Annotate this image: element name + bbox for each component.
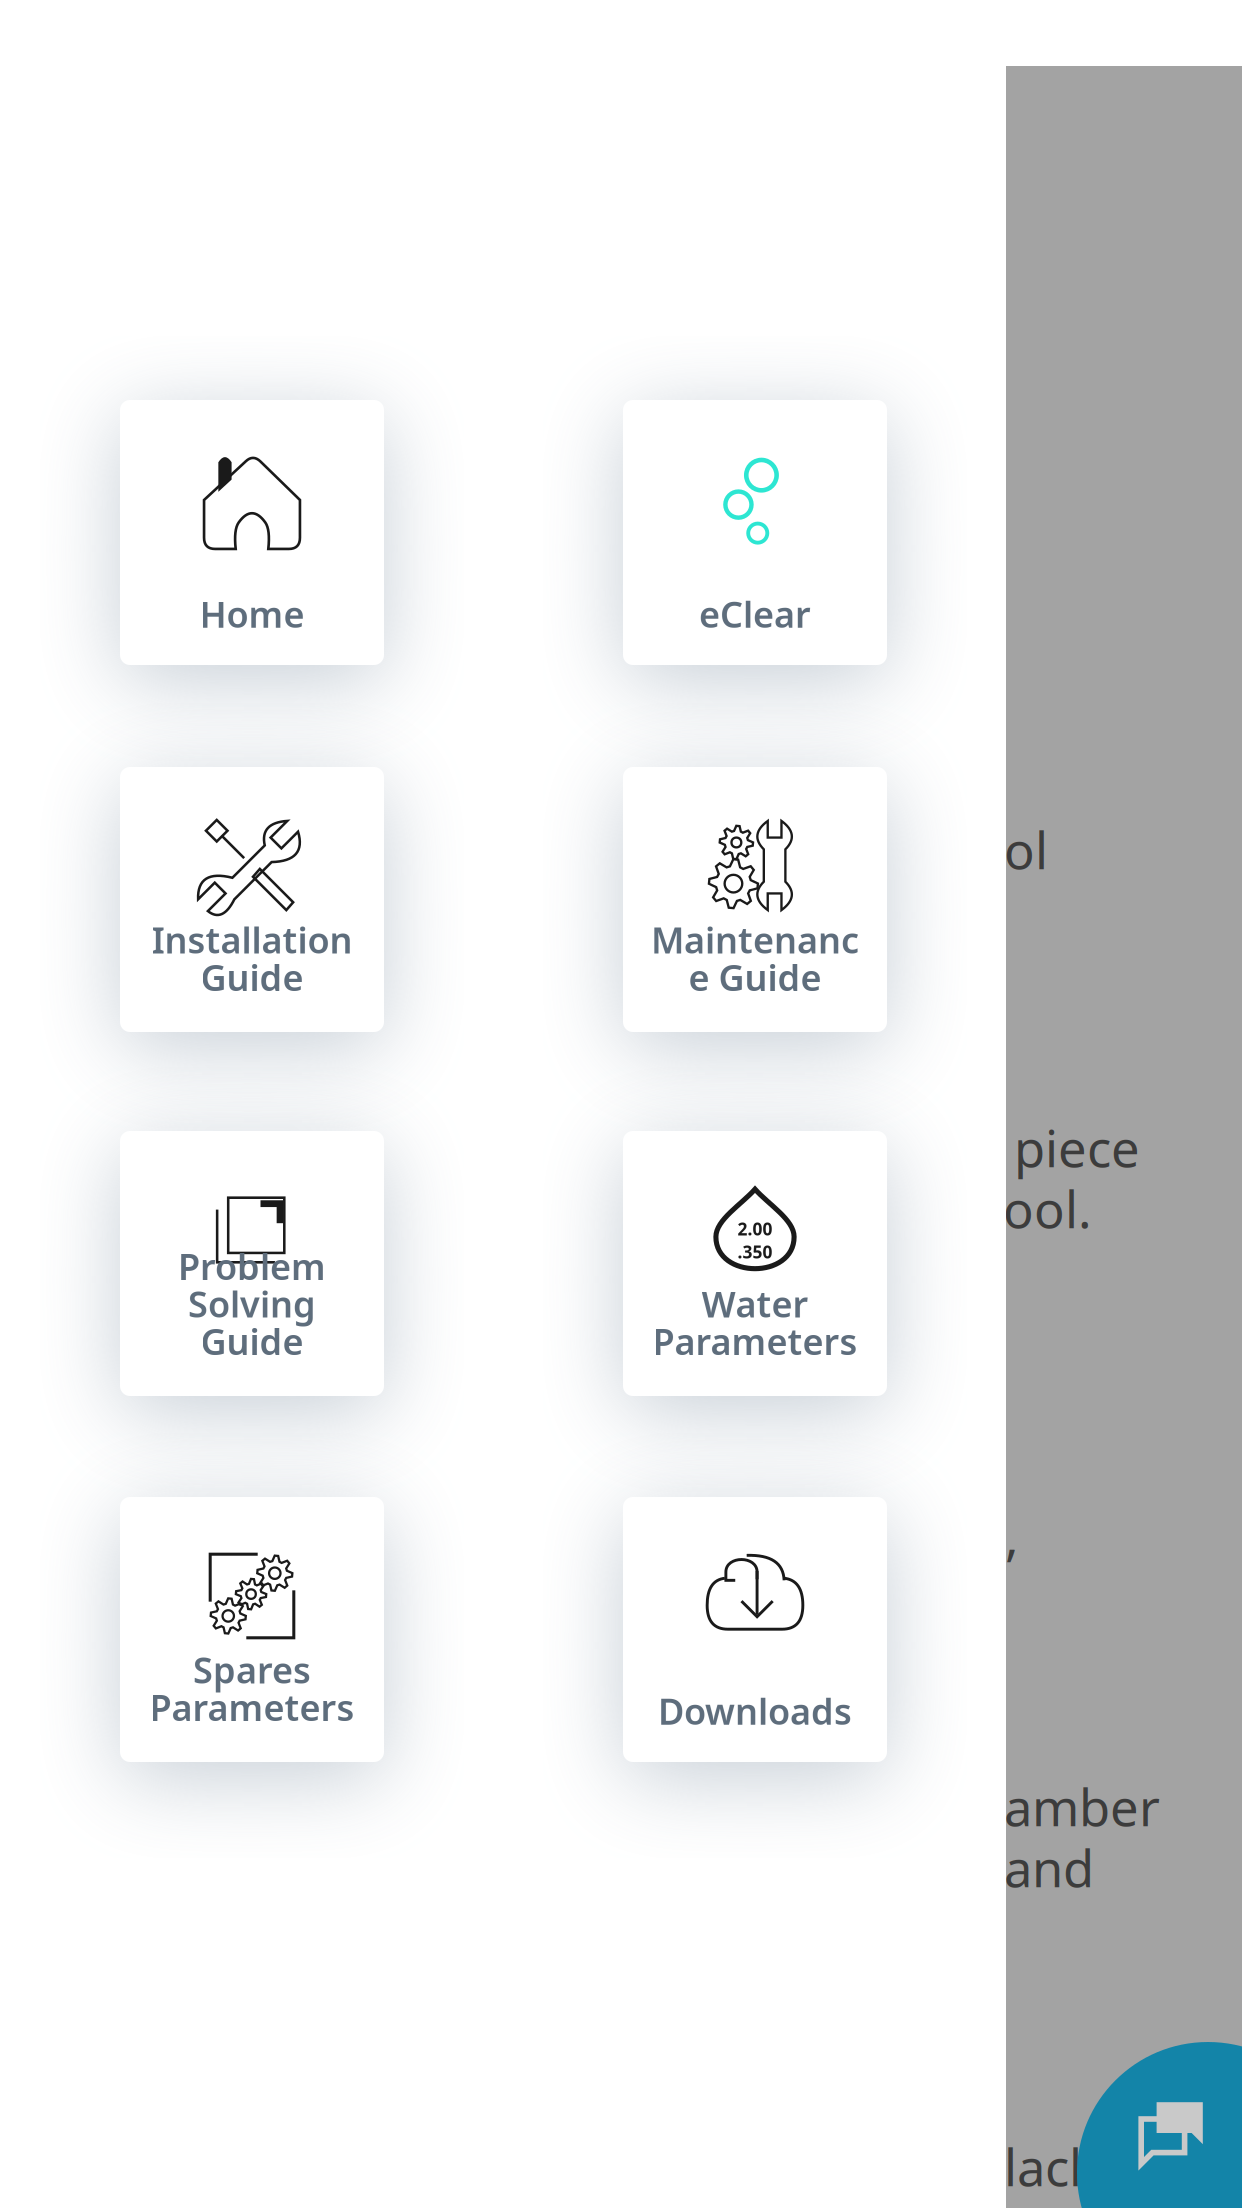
staticText: Guide <box>200 1317 303 1365</box>
staticText: Parameters <box>149 1683 354 1731</box>
button[interactable]: Open chat <box>1077 2042 1242 2208</box>
staticText: Home <box>199 590 304 638</box>
staticText: .350 <box>737 1240 772 1263</box>
button[interactable]: Spares <box>120 1497 384 1762</box>
staticText: eClear <box>699 590 811 638</box>
staticText: Solving <box>188 1280 316 1327</box>
button[interactable]: Maintenanc <box>623 767 887 1032</box>
staticText: piece <box>1014 1114 1140 1181</box>
staticText: Water <box>701 1280 808 1327</box>
staticText: Downloads <box>658 1687 852 1735</box>
staticText: ol <box>1004 816 1048 883</box>
staticText: e Guide <box>688 953 821 1001</box>
staticText: amber <box>1004 1773 1160 1840</box>
staticText: 2.00 <box>737 1217 772 1240</box>
staticText: Installation <box>151 916 352 963</box>
staticText: Parameters <box>652 1317 857 1365</box>
staticText: and <box>1004 1834 1094 1901</box>
staticText: ool. <box>1003 1175 1092 1242</box>
staticText: Problem <box>178 1242 326 1290</box>
staticText: Guide <box>200 953 303 1001</box>
button[interactable]: Installation <box>120 767 384 1032</box>
button[interactable]: Downloads <box>623 1497 887 1762</box>
button[interactable]: 2.00 <box>623 1131 887 1396</box>
button[interactable]: Problem <box>120 1131 384 1396</box>
staticText: Maintenanc <box>651 916 859 963</box>
staticText: Spares <box>193 1646 311 1693</box>
button[interactable]: eClear <box>623 400 887 665</box>
button[interactable]: Home <box>120 400 384 665</box>
staticText: lack <box>1004 2133 1096 2200</box>
staticText: , <box>1005 1502 1019 1569</box>
